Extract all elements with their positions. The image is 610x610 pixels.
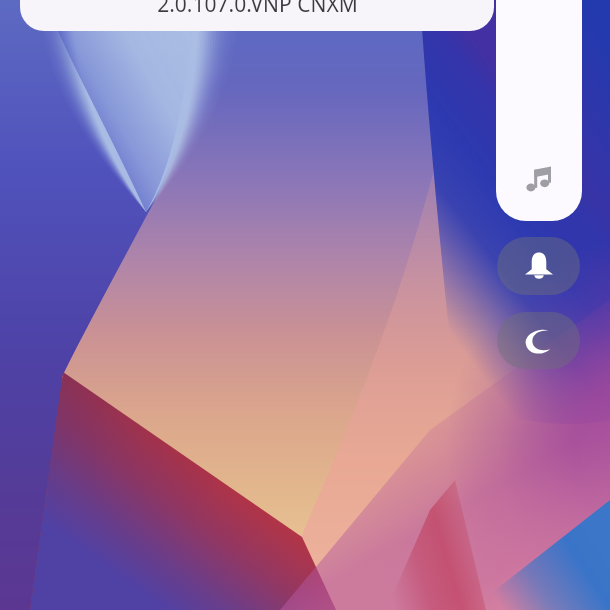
button[interactable]: 2.0.107.0.VNP CNXM [20,0,494,31]
button[interactable]: Notifications [497,237,580,295]
button[interactable]: Do not disturb [497,312,580,369]
button[interactable]: Music [496,0,582,221]
staticText: 2.0.107.0.VNP CNXM [157,0,358,19]
